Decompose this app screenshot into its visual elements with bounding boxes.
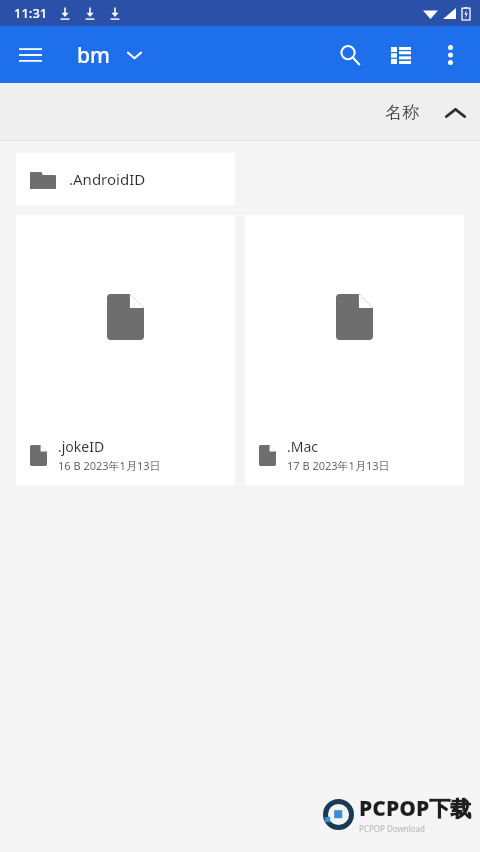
button[interactable]: .jokeID [16, 215, 235, 485]
staticText: 16 B 2023年1月13日 [58, 458, 161, 473]
staticText: 名称 [385, 102, 419, 123]
staticText: .jokeID [58, 437, 105, 456]
staticText: 17 B 2023年1月13日 [287, 458, 390, 473]
button[interactable]: Search [326, 31, 374, 79]
button[interactable]: Open navigation drawer [6, 31, 54, 79]
staticText: PCPOP Download [359, 823, 425, 834]
button[interactable]: bm [75, 35, 144, 76]
button[interactable]: .AndroidID [16, 153, 235, 205]
staticText: 11:31 [14, 4, 48, 22]
staticText: PCPOP下载 [359, 794, 472, 823]
staticText: .Mac [287, 437, 319, 456]
staticText: bm [77, 41, 110, 70]
button[interactable]: Switch to list view [377, 31, 425, 79]
button[interactable]: .Mac [245, 215, 464, 485]
staticText: .AndroidID [69, 169, 146, 189]
button[interactable]: More options [426, 31, 474, 79]
button[interactable]: 名称 [377, 94, 474, 131]
